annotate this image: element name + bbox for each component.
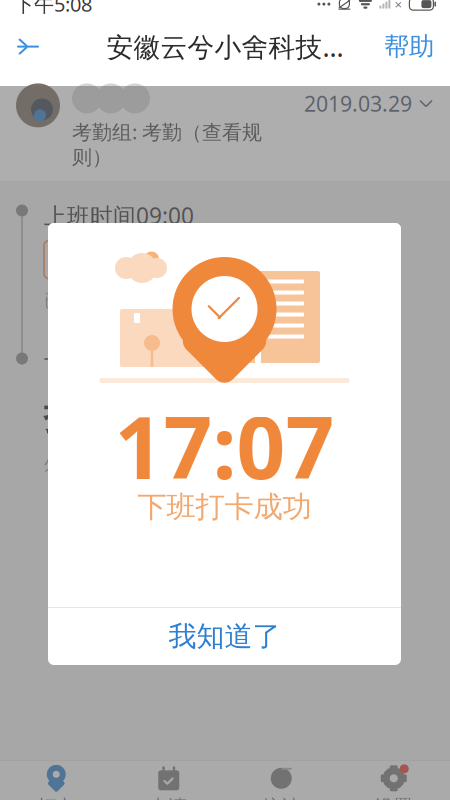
staticText: 我知道了 bbox=[168, 619, 280, 654]
staticText: 帮助 bbox=[384, 31, 434, 62]
button[interactable]: 2019.03.29 bbox=[304, 83, 434, 118]
staticText: 考勤组: 考勤（查看规则） bbox=[72, 118, 262, 169]
staticText: 外勤打卡 bbox=[44, 452, 120, 475]
button[interactable]: 我知道了 bbox=[48, 608, 401, 665]
staticText: 打卡 bbox=[37, 795, 75, 800]
button[interactable]: 帮助 bbox=[368, 20, 450, 74]
staticText: 申请 bbox=[150, 795, 188, 800]
button[interactable]: 申请 bbox=[112, 761, 225, 800]
staticText: 下班时间18:00 bbox=[44, 352, 194, 382]
staticText: 17:07 bbox=[114, 389, 334, 503]
button[interactable]: 统计 bbox=[225, 761, 337, 800]
staticText: 打卡 bbox=[44, 396, 114, 438]
staticText: 设置 bbox=[375, 795, 413, 800]
staticText: 下午5:08 bbox=[14, 0, 92, 17]
staticText: × bbox=[394, 0, 402, 13]
staticText: 下班打卡成功 bbox=[137, 489, 311, 525]
staticText: 安徽云兮小舍科技... bbox=[106, 29, 343, 64]
staticText: 上班时间09:00 bbox=[44, 200, 194, 231]
button[interactable]: 打卡 bbox=[0, 761, 112, 800]
button[interactable]: 返回 bbox=[0, 20, 56, 74]
button[interactable]: 设置 bbox=[337, 761, 450, 800]
staticText: 统计 bbox=[262, 795, 300, 800]
staticText: 已打卡 08:41 bbox=[44, 289, 145, 312]
staticText: 2019.03.29 bbox=[304, 89, 412, 118]
